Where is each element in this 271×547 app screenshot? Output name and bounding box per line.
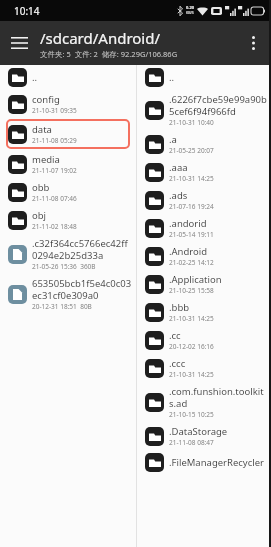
button[interactable]: .Android (137, 242, 271, 270)
staticText: 21-10-31 14:25 (169, 370, 214, 379)
staticText: .. (32, 71, 38, 84)
button[interactable]: .a (137, 130, 271, 158)
button[interactable]: .c32f364cc5766ec42ff0294e2b25d33a (0, 234, 136, 274)
staticText: 21-11-08 05:29 (32, 136, 77, 145)
staticText: .andorid (169, 217, 207, 230)
staticText: data (32, 123, 52, 136)
staticText: 21-02-25 14:12 (169, 258, 214, 267)
button[interactable]: .Application (137, 270, 271, 298)
button[interactable]: Menu (0, 24, 38, 62)
staticText: 21-05-25 20:07 (169, 146, 214, 155)
button[interactable]: .. (137, 65, 271, 90)
button[interactable]: obj (0, 206, 136, 234)
staticText: 21-10-31 09:35 (32, 106, 77, 115)
button[interactable]: .com.funshion.toolkits.ad (137, 382, 271, 422)
staticText: .Android (169, 245, 208, 258)
button[interactable]: config (0, 90, 136, 118)
button[interactable]: 653505bcb1f5e4c0c03ec31cf0e309a0 (0, 274, 136, 314)
staticText: 21-11-08 07:46 (32, 194, 77, 203)
staticText: .com.funshion.toolkits.ad (169, 385, 267, 410)
staticText: .a (169, 133, 177, 146)
staticText: 21-11-07 19:02 (32, 166, 77, 175)
staticText: media (32, 153, 60, 166)
button[interactable]: More options (235, 25, 271, 61)
staticText: .6226f7cbe59e99a90b5cef6f94f966fd (169, 93, 267, 118)
staticText: 21-11-02 18:48 (32, 222, 77, 231)
staticText: 20-12-31 18:51 80B (32, 302, 92, 311)
button[interactable]: data (0, 118, 136, 150)
staticText: .ccc (169, 357, 186, 370)
staticText: 10:14 (14, 4, 40, 18)
staticText: KB/S (186, 10, 194, 15)
staticText: 21-07-16 19:24 (169, 202, 214, 211)
staticText: 21-05-14 19:11 (169, 230, 214, 239)
button[interactable]: .FileManagerRecycler (137, 450, 271, 475)
staticText: .DataStorage (169, 425, 228, 438)
staticText: .c32f364cc5766ec42ff0294e2b25d33a (32, 237, 132, 262)
staticText: 21-10-15 10:25 (169, 410, 214, 419)
staticText: .bbb (169, 301, 190, 314)
button[interactable]: .andorid (137, 214, 271, 242)
staticText: .. (169, 71, 175, 84)
staticText: obb (32, 181, 50, 194)
staticText: 21-11-08 08:47 (169, 438, 214, 447)
staticText: /sdcard/Android/ (40, 28, 161, 48)
button[interactable]: .bbb (137, 298, 271, 326)
staticText: obj (32, 209, 47, 222)
button[interactable]: media (0, 150, 136, 178)
staticText: 20-12-02 16:16 (169, 342, 214, 351)
staticText: 文件夹: 5 文件: 2 储存: 92.29G/106.86G (40, 49, 178, 59)
staticText: 21-10-31 10:40 (169, 118, 214, 127)
staticText: .FileManagerRecycler (169, 456, 264, 469)
staticText: 21-10-31 14:25 (169, 314, 214, 323)
staticText: .Application (169, 273, 222, 286)
button[interactable]: .ads (137, 186, 271, 214)
button[interactable]: .DataStorage (137, 422, 271, 450)
staticText: 653505bcb1f5e4c0c03ec31cf0e309a0 (32, 277, 132, 302)
button[interactable]: .6226f7cbe59e99a90b5cef6f94f966fd (137, 90, 271, 130)
button[interactable]: .cc (137, 326, 271, 354)
staticText: .cc (169, 329, 181, 342)
button[interactable]: .aaa (137, 158, 271, 186)
button[interactable]: .. (0, 65, 136, 90)
staticText: 21-10-25 15:58 (169, 286, 214, 295)
staticText: 21-05-26 15:36 360B (32, 262, 96, 271)
staticText: 21-10-31 14:25 (169, 174, 214, 183)
button[interactable]: .ccc (137, 354, 271, 382)
staticText: .ads (169, 189, 188, 202)
staticText: config (32, 93, 60, 106)
staticText: 0.20 (186, 5, 194, 10)
staticText: .aaa (169, 161, 188, 174)
button[interactable]: obb (0, 178, 136, 206)
